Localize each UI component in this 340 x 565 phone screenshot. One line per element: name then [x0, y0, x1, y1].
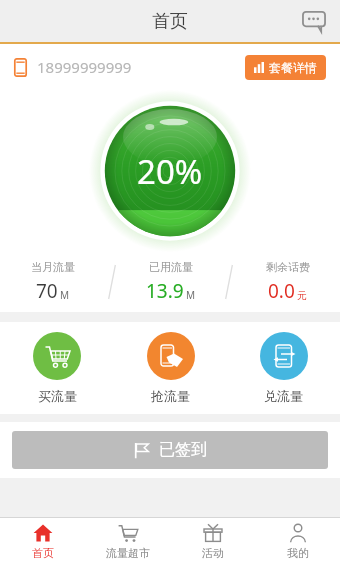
staticText: M	[60, 288, 70, 302]
button[interactable]: 已用流量	[118, 260, 223, 304]
staticText: 0.0	[268, 278, 295, 304]
staticText: 20%	[137, 149, 203, 194]
button[interactable]: 抢流量	[114, 332, 227, 404]
staticText: 剩余话费	[266, 260, 310, 274]
staticText: 套餐详情	[269, 60, 317, 75]
staticText: 已签到	[159, 440, 207, 460]
button[interactable]: 当月流量	[0, 260, 106, 304]
button[interactable]: 兑流量	[227, 332, 340, 404]
staticText: 18999999999	[37, 57, 132, 77]
staticText: 活动	[202, 546, 224, 560]
staticText: 我的	[287, 546, 309, 560]
staticText: 13.9	[146, 278, 184, 304]
button[interactable]: 活动	[170, 518, 255, 565]
staticText: 抢流量	[151, 388, 190, 404]
staticText: 已用流量	[149, 260, 193, 274]
button[interactable]: 流量超市	[85, 518, 170, 565]
staticText: 买流量	[38, 388, 77, 404]
staticText: 首页	[32, 546, 54, 560]
button[interactable]: 已签到	[12, 431, 328, 469]
button[interactable]: 剩余话费	[235, 260, 340, 304]
button[interactable]: 买流量	[0, 332, 114, 404]
staticText: M	[186, 288, 196, 302]
staticText: 70	[36, 278, 58, 304]
staticText: 当月流量	[31, 260, 75, 274]
staticText: 兑流量	[264, 388, 303, 404]
button[interactable]: 套餐详情	[245, 55, 326, 80]
staticText: 首页	[152, 10, 188, 33]
staticText: 元	[297, 289, 307, 302]
button[interactable]: 我的	[255, 518, 340, 565]
staticText: 流量超市	[106, 546, 150, 560]
button[interactable]: 首页	[0, 518, 85, 565]
button[interactable]: Messages	[296, 3, 332, 39]
